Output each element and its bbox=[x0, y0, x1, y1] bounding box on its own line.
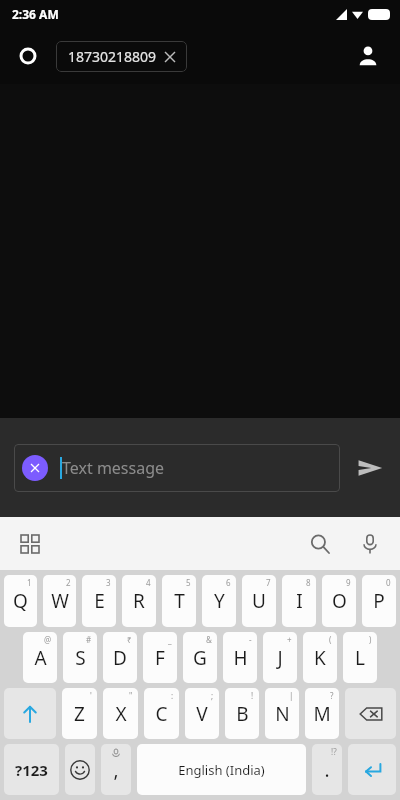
button[interactable]: I bbox=[282, 575, 316, 627]
staticText: 4 bbox=[146, 577, 151, 588]
staticText: T bbox=[174, 588, 185, 614]
button[interactable]: enter bbox=[348, 744, 396, 795]
staticText: 9 bbox=[346, 577, 351, 588]
staticText: L bbox=[355, 645, 365, 671]
button[interactable]: H bbox=[223, 632, 257, 683]
staticText: 2 bbox=[66, 577, 71, 588]
staticText: B bbox=[236, 701, 249, 727]
button[interactable]: G bbox=[183, 632, 217, 683]
staticText: 18730218809 bbox=[68, 47, 157, 66]
button[interactable]: J bbox=[263, 632, 297, 683]
staticText: 6 bbox=[226, 577, 231, 588]
staticText: ( bbox=[329, 634, 332, 645]
button[interactable]: U bbox=[242, 575, 276, 627]
staticText: P bbox=[373, 588, 385, 614]
staticText: + bbox=[287, 634, 292, 645]
staticText: _ bbox=[168, 634, 172, 645]
button[interactable]: X bbox=[103, 688, 138, 739]
button[interactable]: Search bbox=[302, 526, 338, 562]
button[interactable]: . bbox=[312, 744, 342, 795]
staticText: O bbox=[332, 588, 347, 614]
staticText: 7 bbox=[266, 577, 271, 588]
staticText: 3 bbox=[106, 577, 111, 588]
staticText: . bbox=[324, 757, 330, 783]
button[interactable]: emoji bbox=[65, 744, 95, 795]
button[interactable]: E bbox=[82, 575, 116, 627]
staticText: E bbox=[94, 588, 105, 614]
staticText: F bbox=[155, 645, 165, 671]
staticText: 8 bbox=[306, 577, 311, 588]
button[interactable]: English (India) bbox=[137, 744, 306, 795]
staticText: | bbox=[289, 690, 294, 701]
staticText: - bbox=[249, 634, 252, 645]
button[interactable]: Record bbox=[14, 42, 42, 70]
staticText: !? bbox=[331, 746, 337, 757]
staticText: J bbox=[277, 645, 283, 671]
staticText: English (India) bbox=[178, 761, 265, 779]
staticText: U bbox=[252, 588, 266, 614]
staticText: H bbox=[233, 645, 248, 671]
staticText: I bbox=[296, 588, 303, 614]
button[interactable]: Z bbox=[62, 688, 97, 739]
button[interactable]: Voice input bbox=[352, 526, 388, 562]
button[interactable]: O bbox=[322, 575, 356, 627]
button[interactable]: Send bbox=[340, 418, 400, 517]
button[interactable]: N bbox=[265, 688, 299, 739]
button[interactable]: Keyboard options bbox=[12, 526, 48, 562]
staticText: : bbox=[171, 690, 174, 701]
staticText: ) bbox=[369, 634, 372, 645]
staticText: N bbox=[275, 701, 290, 727]
staticText: R bbox=[133, 588, 145, 614]
staticText: ' bbox=[90, 690, 92, 701]
button[interactable]: W bbox=[43, 575, 76, 627]
staticText: V bbox=[196, 701, 208, 727]
staticText: , bbox=[113, 757, 119, 783]
staticText: Z bbox=[74, 701, 85, 727]
button[interactable]: S bbox=[63, 632, 97, 683]
staticText: C bbox=[155, 701, 168, 727]
staticText: ₹ bbox=[127, 634, 132, 645]
button[interactable]: K bbox=[303, 632, 337, 683]
staticText: Q bbox=[13, 588, 28, 614]
staticText: ?123 bbox=[15, 760, 48, 780]
button[interactable]: R bbox=[122, 575, 156, 627]
staticText: A bbox=[34, 645, 47, 671]
button[interactable]: Q bbox=[4, 575, 37, 627]
button[interactable]: P bbox=[362, 575, 396, 627]
staticText: W bbox=[51, 588, 69, 614]
button[interactable]: , bbox=[101, 744, 131, 795]
staticText: ? bbox=[330, 690, 334, 701]
button[interactable]: Text message bbox=[14, 444, 340, 492]
staticText: X bbox=[115, 701, 127, 727]
staticText: Y bbox=[214, 588, 225, 614]
button[interactable]: ?123 bbox=[4, 744, 59, 795]
button[interactable]: D bbox=[103, 632, 137, 683]
button[interactable]: Y bbox=[202, 575, 236, 627]
staticText: # bbox=[86, 634, 92, 645]
staticText: S bbox=[75, 645, 86, 671]
staticText: M bbox=[313, 701, 331, 727]
button[interactable]: shift bbox=[4, 688, 56, 739]
staticText: ! bbox=[251, 690, 254, 701]
button[interactable]: del bbox=[345, 688, 396, 739]
button[interactable]: V bbox=[185, 688, 219, 739]
button[interactable]: F bbox=[143, 632, 177, 683]
staticText: ; bbox=[211, 690, 214, 701]
button[interactable]: 18730218809 bbox=[56, 41, 187, 72]
button[interactable]: Contacts bbox=[350, 38, 386, 74]
button[interactable]: A bbox=[23, 632, 57, 683]
staticText: 0 bbox=[386, 577, 391, 588]
staticText: G bbox=[193, 645, 207, 671]
button[interactable]: M bbox=[305, 688, 339, 739]
staticText: & bbox=[206, 634, 212, 645]
staticText: D bbox=[113, 645, 127, 671]
button[interactable]: L bbox=[343, 632, 377, 683]
staticText: 2:36 AM bbox=[12, 6, 59, 22]
staticText: K bbox=[314, 645, 326, 671]
button[interactable]: B bbox=[225, 688, 259, 739]
staticText: " bbox=[129, 690, 133, 701]
button[interactable]: C bbox=[144, 688, 179, 739]
button[interactable]: T bbox=[162, 575, 196, 627]
staticText: 5 bbox=[186, 577, 191, 588]
staticText: 1 bbox=[27, 577, 32, 588]
